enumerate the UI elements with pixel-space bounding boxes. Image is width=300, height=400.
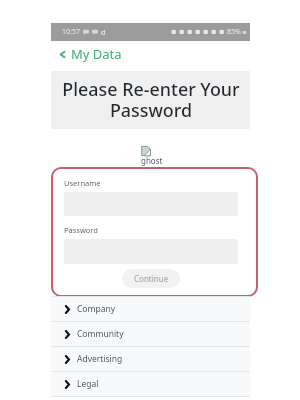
button[interactable]: Continue — [122, 269, 180, 288]
staticText: Please Re-enter Your Password — [60, 77, 242, 123]
staticText: Legal — [77, 378, 99, 390]
staticText: Community — [77, 328, 124, 340]
staticText: Continue — [134, 273, 169, 284]
button[interactable]: Advertising — [51, 347, 250, 371]
staticText: Password — [64, 225, 98, 235]
button[interactable]: Company — [51, 297, 250, 321]
staticText: Company — [77, 303, 116, 315]
staticText: ghost — [141, 155, 163, 166]
button[interactable]: Back to My Data — [51, 39, 250, 69]
staticText: 85% — [227, 27, 241, 37]
staticText: Advertising — [77, 353, 123, 365]
button[interactable]: Legal — [51, 372, 250, 396]
button[interactable]: Community — [51, 322, 250, 346]
staticText: Username — [64, 178, 101, 188]
staticText: d — [101, 27, 106, 37]
staticText: 10:57 — [62, 27, 80, 37]
staticText: My Data — [71, 45, 122, 63]
